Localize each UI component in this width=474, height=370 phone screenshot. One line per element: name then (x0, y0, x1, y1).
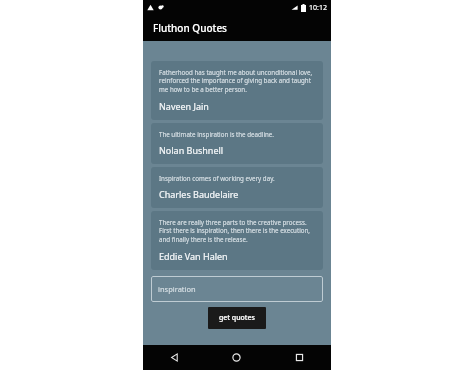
staticText: Charles Baudelaire (159, 188, 239, 200)
staticText: Fatherhood has taught me about unconditi… (159, 68, 315, 94)
staticText: inspiration (158, 284, 196, 294)
button[interactable]: Inspiration comes of working every day. (151, 167, 323, 208)
staticText: Nolan Bushnell (159, 144, 224, 156)
staticText: Naveen Jain (159, 100, 209, 112)
staticText: Inspiration comes of working every day. (159, 174, 275, 182)
button[interactable]: Recents (268, 345, 331, 370)
staticText: Fluthon Quotes (153, 21, 227, 35)
staticText: 10:12 (309, 3, 327, 13)
button[interactable]: Back (143, 345, 205, 370)
button[interactable]: The ultimate inspiration is the deadline… (151, 123, 323, 164)
staticText: Eddie Van Halen (159, 250, 228, 262)
button[interactable]: Home (205, 345, 268, 370)
button[interactable]: inspiration (151, 276, 323, 302)
button[interactable]: There are really three parts to the crea… (151, 211, 323, 270)
staticText: There are really three parts to the crea… (159, 218, 315, 244)
staticText: The ultimate inspiration is the deadline… (159, 130, 274, 138)
staticText: get quotes (219, 313, 255, 323)
button[interactable]: get quotes (208, 307, 266, 329)
button[interactable]: Fatherhood has taught me about unconditi… (151, 61, 323, 120)
